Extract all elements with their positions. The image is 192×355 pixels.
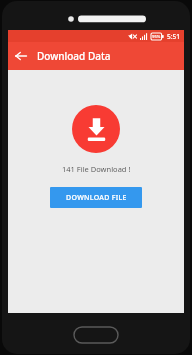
button[interactable]: DOWNLOAD FILE: [50, 187, 142, 208]
staticText: 95%: [152, 34, 161, 40]
button[interactable]: Back: [8, 43, 34, 69]
staticText: DOWNLOAD FILE: [66, 193, 127, 203]
staticText: Download Data: [37, 49, 111, 63]
staticText: 141 File Download !: [62, 164, 131, 174]
staticText: 5:51: [167, 32, 180, 41]
button[interactable]: Download: [72, 105, 120, 153]
